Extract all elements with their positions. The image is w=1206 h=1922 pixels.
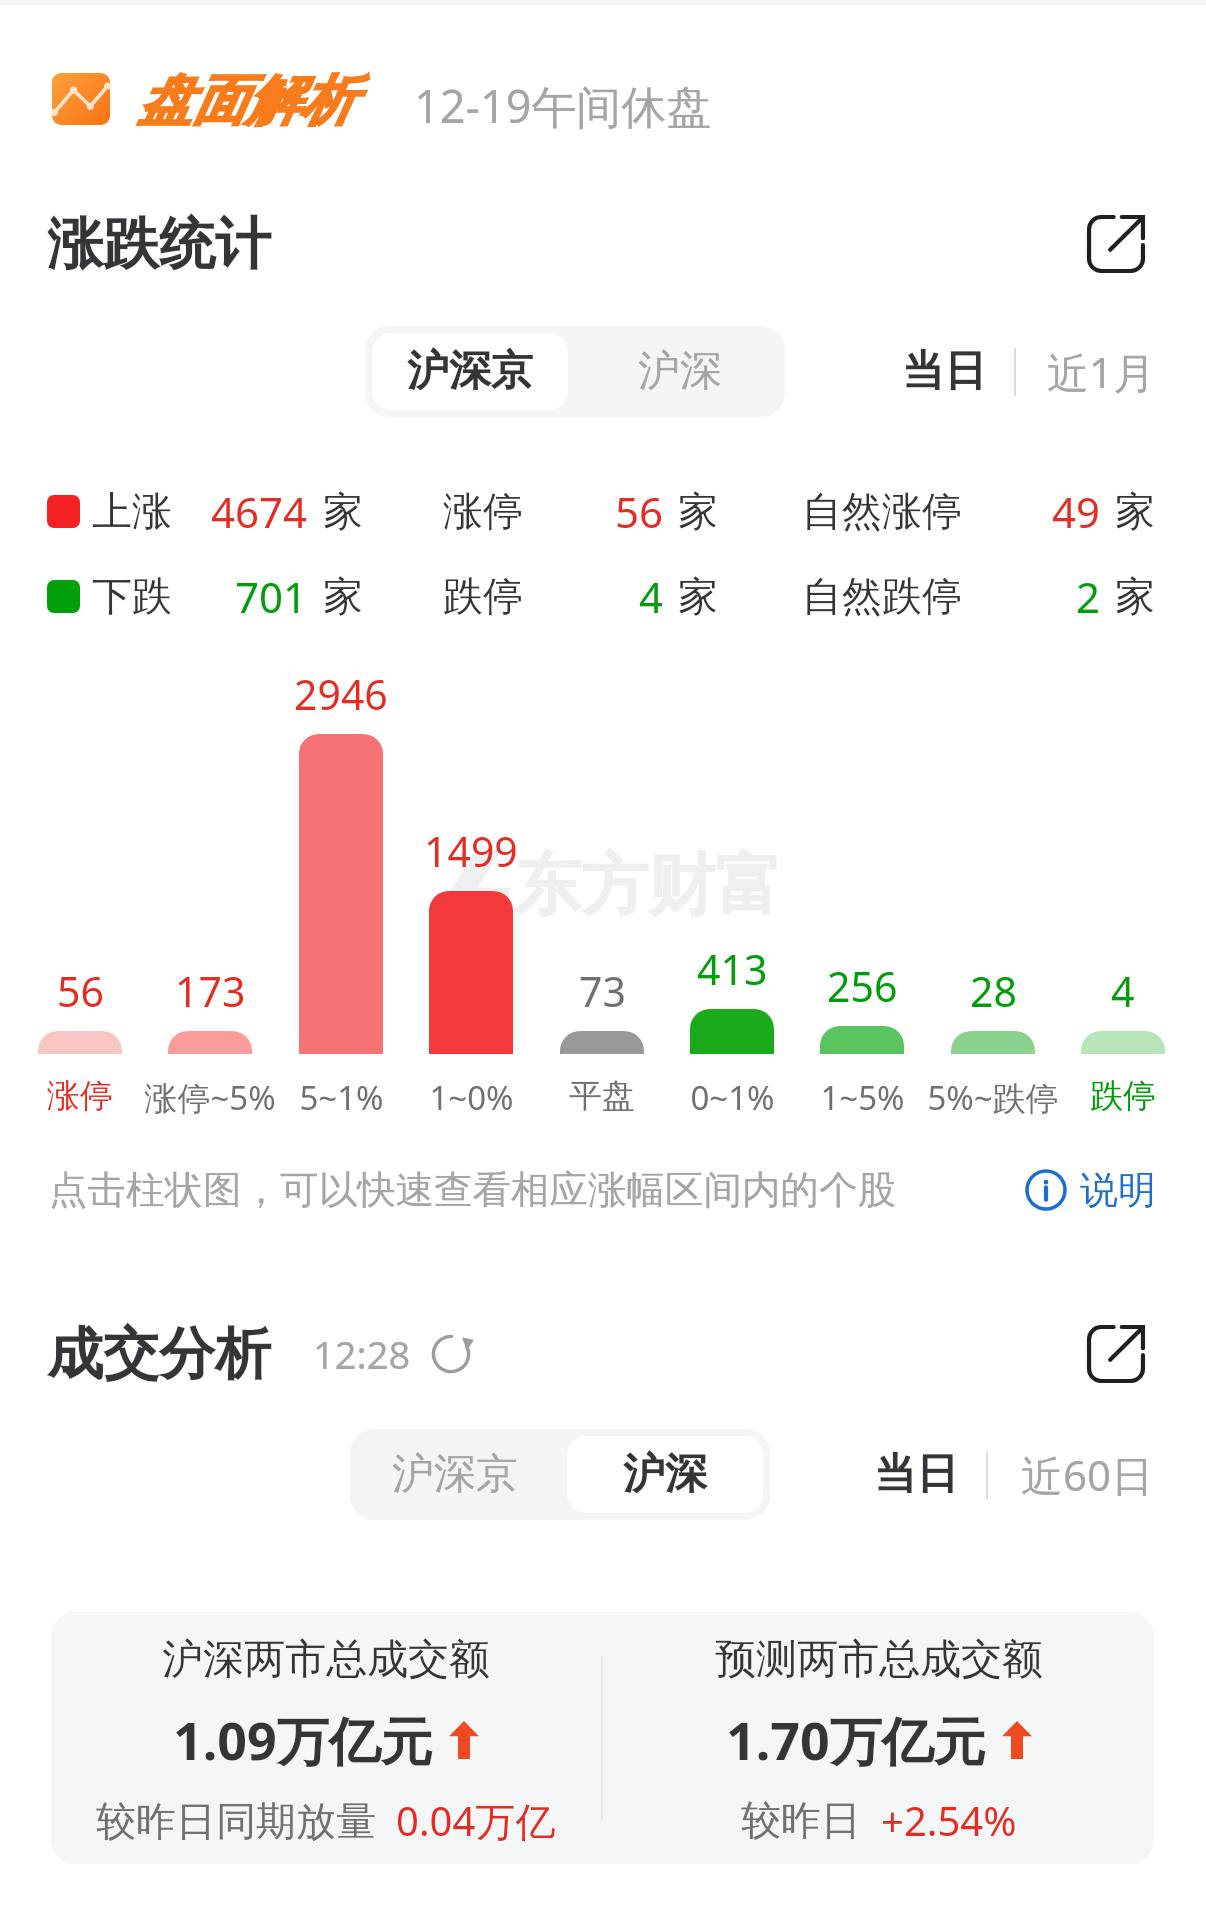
button[interactable] [690, 1009, 774, 1054]
staticText: 56 [57, 963, 104, 1019]
staticText: 涨跌统计 [47, 209, 271, 280]
staticText: 2946 [294, 666, 388, 722]
button[interactable] [560, 1031, 644, 1054]
staticText: 家 [678, 571, 718, 621]
button[interactable] [299, 734, 383, 1054]
staticText: 沪深京 [392, 1448, 518, 1501]
staticText: 73 [579, 963, 626, 1019]
staticText: 盘面解析 [138, 67, 354, 135]
staticText: 自然跌停 [802, 571, 962, 621]
staticText: 12:28 [313, 1328, 411, 1380]
staticText: 自然涨停 [802, 486, 962, 536]
staticText: 4 [1111, 963, 1135, 1019]
staticText: 涨停 [443, 486, 523, 536]
staticText: 沪深 [623, 1448, 707, 1501]
button[interactable]: Open in new window [1074, 1312, 1158, 1396]
button[interactable]: 沪深京 [357, 1436, 553, 1513]
button[interactable]: 沪深 [567, 1436, 763, 1513]
staticText: 1~5% [820, 1075, 905, 1120]
staticText: 沪深京 [407, 345, 533, 398]
staticText: 4674 [211, 483, 308, 539]
staticText: 沪深 [638, 345, 722, 398]
staticText: 较昨日 [741, 1795, 861, 1845]
button[interactable]: 沪深两市总成交额 [51, 1612, 601, 1864]
button[interactable]: Open in new window [1074, 202, 1158, 286]
button[interactable] [951, 1031, 1035, 1054]
staticText: 平盘 [569, 1075, 635, 1117]
staticText: 东方财富 [514, 843, 782, 927]
button[interactable]: 当日 [878, 326, 1010, 417]
staticText: 5%~跌停 [927, 1075, 1059, 1120]
staticText: 当日 [874, 1448, 958, 1501]
staticText: 5~1% [299, 1075, 384, 1120]
button[interactable] [429, 891, 513, 1054]
staticText: 49 [1052, 483, 1101, 539]
button[interactable]: 近1月 [1023, 326, 1180, 417]
staticText: 成交分析 [47, 1319, 271, 1390]
staticText: 上涨 [92, 486, 172, 536]
button[interactable]: 当日 [850, 1429, 982, 1520]
staticText: 701 [235, 568, 308, 624]
staticText: 家 [678, 486, 718, 536]
staticText: 56 [615, 483, 664, 539]
staticText: 1499 [424, 823, 518, 879]
staticText: 跌停 [1090, 1075, 1156, 1117]
button[interactable]: 预测两市总成交额 [603, 1612, 1154, 1864]
staticText: 家 [323, 571, 363, 621]
staticText: 4 [639, 568, 664, 624]
staticText: 1.70万亿元 [726, 1704, 986, 1775]
staticText: 1.09万亿元 [173, 1704, 433, 1775]
staticText: 点击柱状图，可以快速查看相应涨幅区间内的个股 [49, 1166, 896, 1215]
staticText: 说明 [1080, 1166, 1156, 1214]
button[interactable]: 说明 [1024, 1159, 1156, 1221]
staticText: 家 [1115, 486, 1155, 536]
staticText: 12-19午间休盘 [414, 75, 712, 136]
staticText: 涨停~5% [144, 1075, 276, 1120]
staticText: 0~1% [690, 1075, 775, 1120]
staticText: 下跌 [92, 571, 172, 621]
staticText: 家 [1115, 571, 1155, 621]
staticText: 1~0% [429, 1075, 514, 1120]
staticText: 0.04万亿 [396, 1793, 556, 1848]
button[interactable]: 沪深 [582, 333, 778, 410]
staticText: 256 [827, 958, 898, 1014]
staticText: 涨停 [47, 1075, 113, 1117]
button[interactable] [1081, 1031, 1165, 1054]
staticText: 跌停 [443, 571, 523, 621]
staticText: 近1月 [1047, 343, 1156, 400]
staticText: 173 [175, 963, 246, 1019]
staticText: 家 [323, 486, 363, 536]
staticText: 预测两市总成交额 [715, 1634, 1043, 1686]
staticText: 较昨日同期放量 [96, 1796, 376, 1846]
other: 盘面解析 [52, 73, 110, 125]
button[interactable] [820, 1026, 904, 1054]
button[interactable]: 近60日 [997, 1429, 1178, 1520]
button[interactable]: 沪深京 [372, 333, 568, 410]
button[interactable] [38, 1031, 122, 1054]
staticText: 413 [697, 941, 768, 997]
staticText: 28 [970, 963, 1017, 1019]
staticText: 沪深两市总成交额 [162, 1634, 490, 1686]
staticText: 2 [1076, 568, 1101, 624]
staticText: +2.54% [881, 1793, 1017, 1847]
button[interactable] [168, 1031, 252, 1054]
staticText: 当日 [902, 345, 986, 398]
staticText: 近60日 [1021, 1446, 1154, 1503]
